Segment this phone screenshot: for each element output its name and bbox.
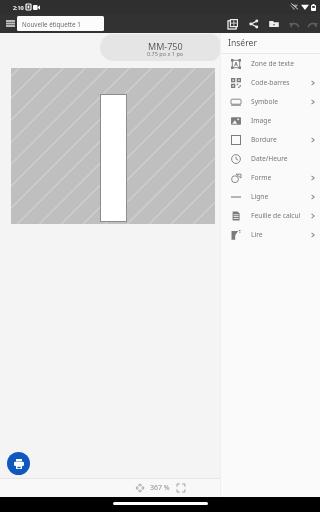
staticText: Feuille de calcul: [251, 211, 301, 220]
button[interactable]: Feuille de calcul: [220, 206, 320, 225]
button[interactable]: Date/Heure: [220, 149, 320, 168]
button[interactable]: Symbole: [220, 92, 320, 111]
button[interactable]: Share: [246, 14, 261, 33]
button[interactable]: Code-barres: [220, 73, 320, 92]
button[interactable]: Full screen: [173, 480, 188, 495]
staticText: Forme: [251, 173, 272, 182]
button[interactable]: Bordure: [220, 130, 320, 149]
staticText: 2:10: [13, 4, 24, 11]
button[interactable]: Nouvelle étiquette 1: [17, 16, 104, 31]
staticText: 367 %: [150, 483, 170, 493]
button[interactable]: Print: [7, 452, 30, 475]
staticText: Nouvelle étiquette 1: [22, 20, 81, 28]
button[interactable]: Undo: [286, 14, 301, 33]
button[interactable]: Image: [220, 111, 320, 130]
button[interactable]: MM-750: [100, 34, 220, 61]
staticText: Zone de texte: [251, 59, 294, 68]
button[interactable]: Menu: [2, 14, 19, 33]
button[interactable]: Folder: [266, 14, 281, 33]
button[interactable]: Forme: [220, 168, 320, 187]
staticText: Image: [251, 116, 272, 125]
staticText: Symbole: [251, 97, 278, 106]
button[interactable]: Ligne: [220, 187, 320, 206]
button[interactable]: Fit to screen: [132, 480, 147, 495]
staticText: Ligne: [251, 192, 269, 201]
staticText: Insérer: [228, 37, 257, 49]
staticText: Code-barres: [251, 78, 290, 87]
button[interactable]: Save as: [225, 14, 240, 33]
button[interactable]: Zone de texte: [220, 54, 320, 73]
button[interactable]: Lire: [220, 225, 320, 244]
staticText: Date/Heure: [251, 154, 288, 163]
staticText: MM-750: [148, 40, 183, 52]
staticText: 0.75 po x 1 po: [147, 50, 184, 57]
button[interactable]: Redo: [305, 14, 320, 33]
staticText: Lire: [251, 230, 263, 239]
staticText: Bordure: [251, 135, 277, 144]
